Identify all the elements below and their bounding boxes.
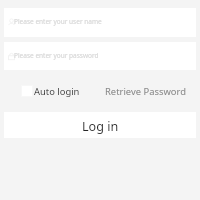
staticText: Log in (82, 118, 119, 135)
button[interactable]: Please enter your password (4, 42, 196, 70)
staticText: Retrieve Password (105, 85, 186, 98)
button[interactable]: Please enter your user name (4, 8, 196, 37)
button[interactable]: Log in (4, 112, 196, 138)
button[interactable]: Auto login (0, 80, 84, 102)
button[interactable]: Retrieve Password (99, 80, 200, 102)
staticText: Auto login (34, 85, 80, 98)
staticText: Please enter your password (14, 51, 99, 60)
staticText: Please enter your user name (14, 17, 102, 26)
